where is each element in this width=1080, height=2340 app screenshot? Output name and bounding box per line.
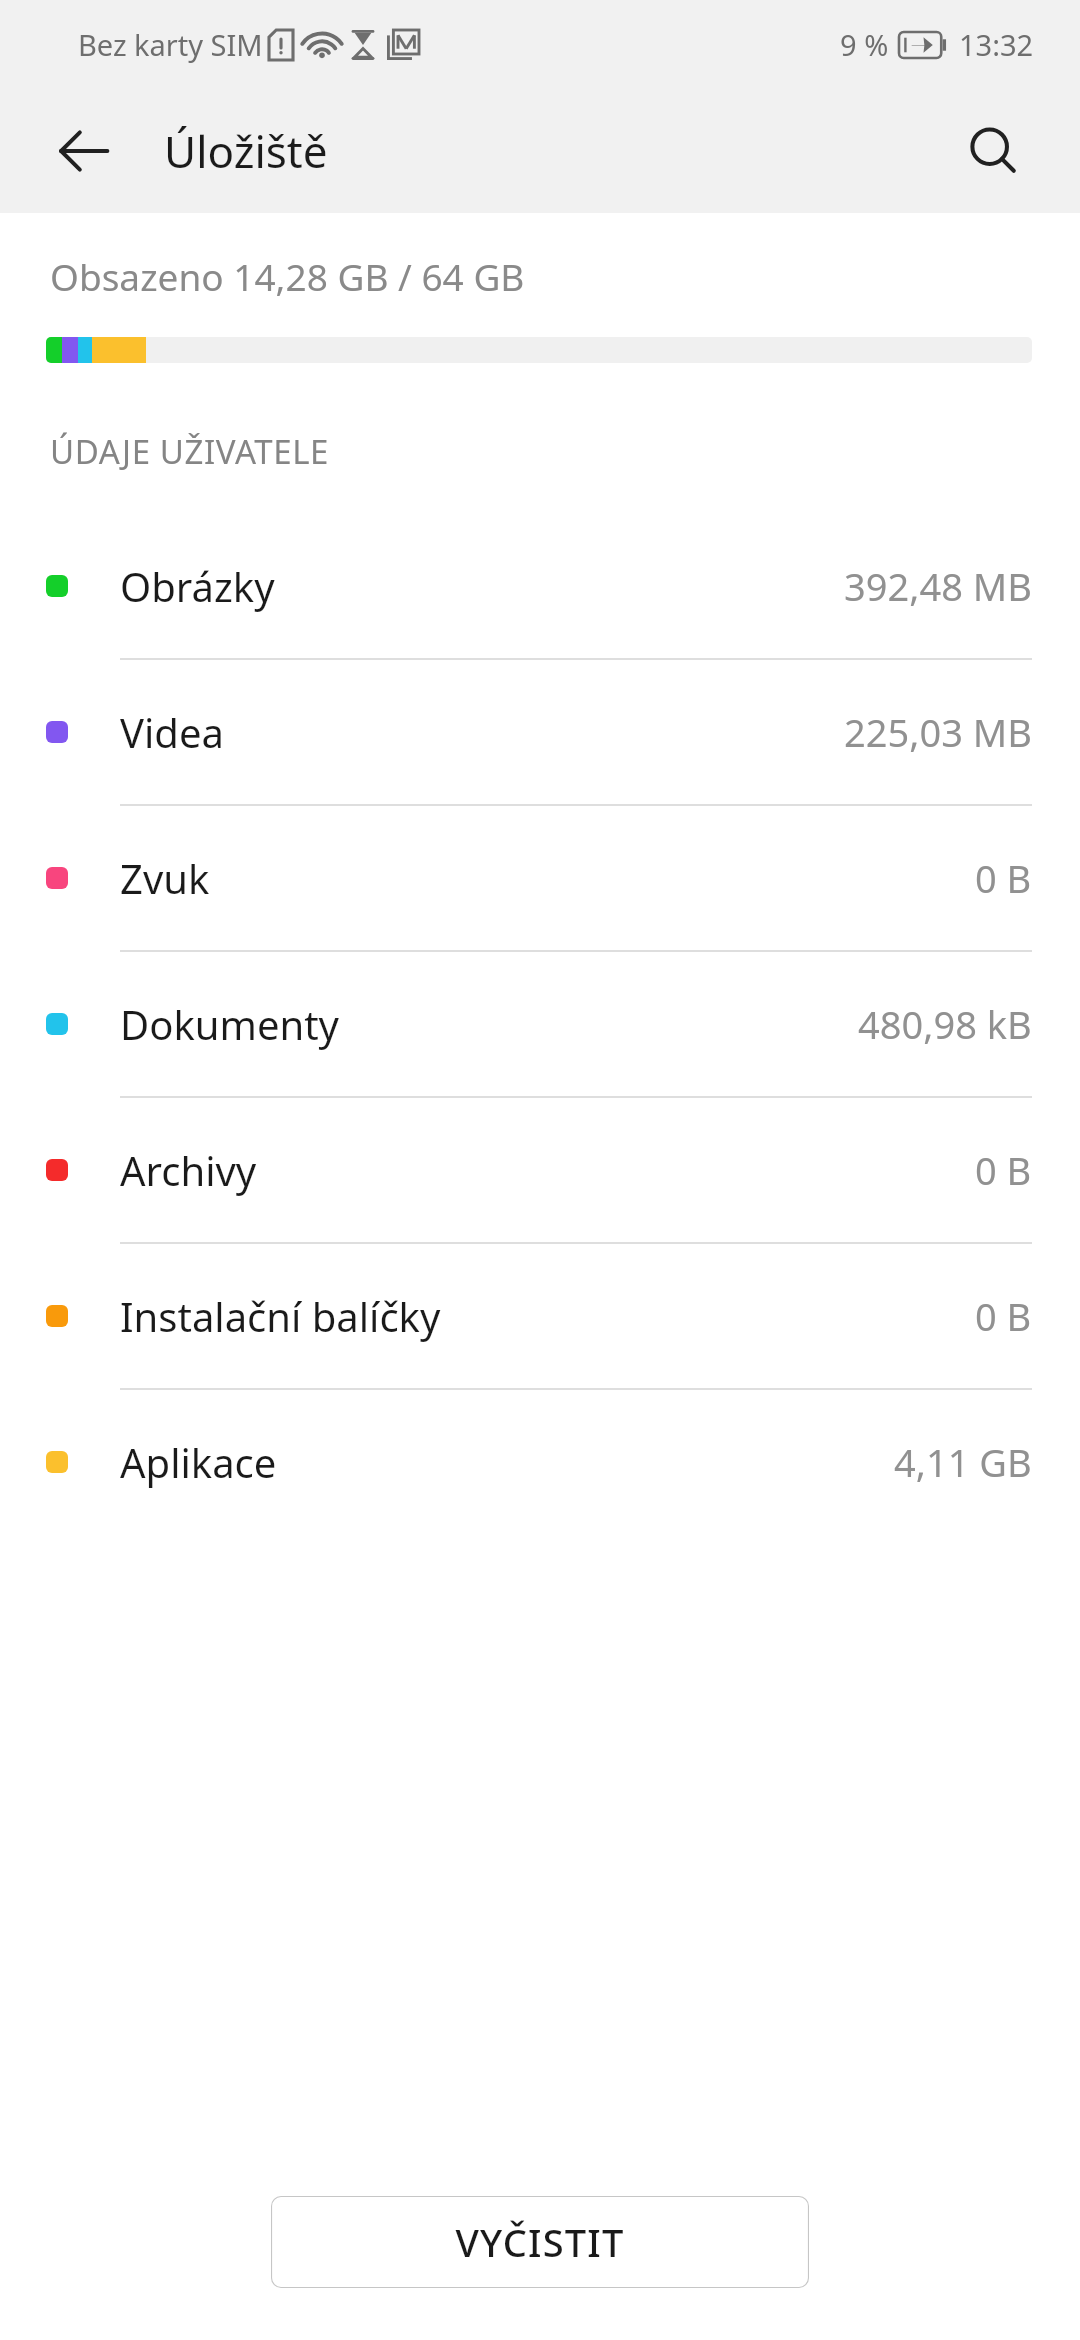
staticText: Obsazeno 14,28 GB / 64 GB bbox=[50, 251, 525, 301]
staticText: Obrázky bbox=[120, 559, 275, 613]
button[interactable]: Aplikace bbox=[0, 1390, 1080, 1534]
button[interactable]: Zvuk bbox=[0, 806, 1080, 950]
staticText: 4,11 GB bbox=[894, 1436, 1032, 1488]
staticText: 225,03 MB bbox=[844, 706, 1032, 758]
staticText: Archivy bbox=[120, 1143, 257, 1197]
button[interactable]: Archivy bbox=[0, 1098, 1080, 1242]
staticText: 480,98 kB bbox=[858, 998, 1032, 1050]
staticText: 392,48 MB bbox=[844, 560, 1032, 612]
staticText: Zvuk bbox=[120, 851, 210, 905]
staticText: Videa bbox=[120, 705, 224, 759]
button[interactable]: Videa bbox=[0, 660, 1080, 804]
staticText: ÚDAJE UŽIVATELE bbox=[50, 429, 330, 474]
staticText: 13:32 bbox=[959, 25, 1034, 64]
button[interactable]: Back bbox=[36, 103, 132, 199]
staticText: Aplikace bbox=[120, 1435, 277, 1489]
staticText: 0 B bbox=[975, 1290, 1032, 1342]
staticText: Dokumenty bbox=[120, 997, 339, 1051]
staticText: VYČISTIT bbox=[455, 2216, 625, 2268]
button[interactable]: Dokumenty bbox=[0, 952, 1080, 1096]
staticText: 9 % bbox=[840, 25, 889, 64]
button[interactable]: VYČISTIT bbox=[271, 2196, 809, 2288]
staticText: Bez karty SIM bbox=[78, 25, 263, 64]
button[interactable]: Search bbox=[946, 103, 1042, 199]
staticText: 0 B bbox=[975, 1144, 1032, 1196]
staticText: Instalační balíčky bbox=[120, 1289, 441, 1343]
staticText: 0 B bbox=[975, 852, 1032, 904]
button[interactable]: Obrázky bbox=[0, 514, 1080, 658]
staticText: Úložiště bbox=[164, 121, 328, 181]
button[interactable]: Instalační balíčky bbox=[0, 1244, 1080, 1388]
